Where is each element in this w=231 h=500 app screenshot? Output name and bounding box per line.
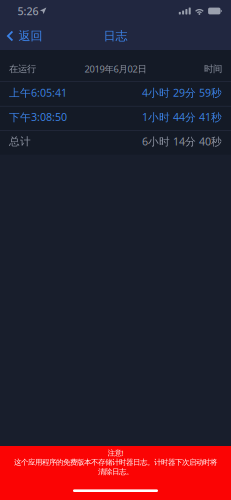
staticText: 返回 [18,29,42,43]
staticText: 清除日志。 [98,467,133,476]
button[interactable]: 返回 [0,22,48,49]
staticText: 在运行 [9,63,36,75]
staticText: 下午3:08:50 [9,110,67,124]
staticText: 上午6:05:41 [9,85,67,100]
staticText: 这个应用程序的免费版本不存储计时器日志。计时器下次启动时将 [14,457,217,467]
staticText: 时间 [204,63,222,75]
staticText: 1小时 44分 41秒 [142,110,222,124]
staticText: 总计 [9,135,31,148]
staticText: 日志 [103,29,127,43]
staticText: 5:26 [17,4,38,18]
staticText: 2019年6月02日 [84,63,146,75]
staticText: 6小时 14分 40秒 [142,134,222,148]
staticText: 4小时 29分 59秒 [142,85,222,100]
staticText: 注意! [107,448,123,458]
